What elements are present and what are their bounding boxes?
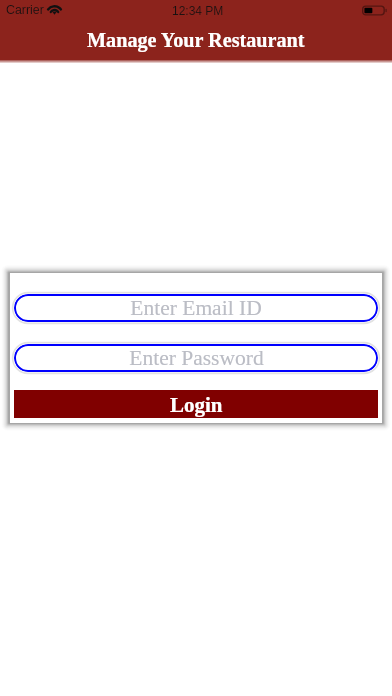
button[interactable]: Enter Email ID [14, 294, 378, 322]
staticText: Enter Password [129, 346, 264, 370]
staticText: Manage Your Restaurant [87, 29, 305, 51]
staticText: Login [170, 393, 223, 416]
button[interactable]: Enter Password [14, 344, 378, 372]
staticText: Carrier [6, 3, 44, 17]
button[interactable]: Login [14, 390, 378, 418]
staticText: Enter Email ID [130, 296, 262, 320]
staticText: 12:34 PM [172, 4, 224, 17]
other: Wi-Fi signal [47, 4, 62, 15]
other: Battery [362, 5, 387, 16]
